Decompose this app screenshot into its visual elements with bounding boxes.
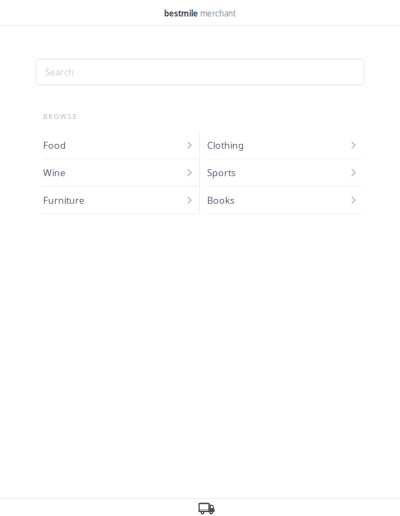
button[interactable]: Food bbox=[36, 132, 199, 159]
staticText: Wine bbox=[43, 166, 65, 179]
button[interactable]: Deliveries bbox=[0, 499, 400, 516]
staticText: Clothing bbox=[207, 139, 244, 151]
button[interactable]: Sports bbox=[200, 159, 363, 187]
staticText: Furniture bbox=[43, 194, 84, 206]
button[interactable]: Furniture bbox=[36, 187, 199, 214]
staticText: bestmile bbox=[164, 8, 198, 19]
staticText: Sports bbox=[207, 166, 235, 179]
staticText: Food bbox=[43, 139, 66, 151]
button[interactable]: Books bbox=[200, 187, 363, 214]
staticText: merchant bbox=[198, 8, 236, 19]
button[interactable]: Clothing bbox=[200, 132, 363, 159]
button[interactable]: Wine bbox=[36, 159, 199, 187]
staticText: Books bbox=[207, 194, 234, 206]
staticText: Search bbox=[45, 66, 74, 78]
staticText: BROWSE bbox=[43, 112, 77, 121]
